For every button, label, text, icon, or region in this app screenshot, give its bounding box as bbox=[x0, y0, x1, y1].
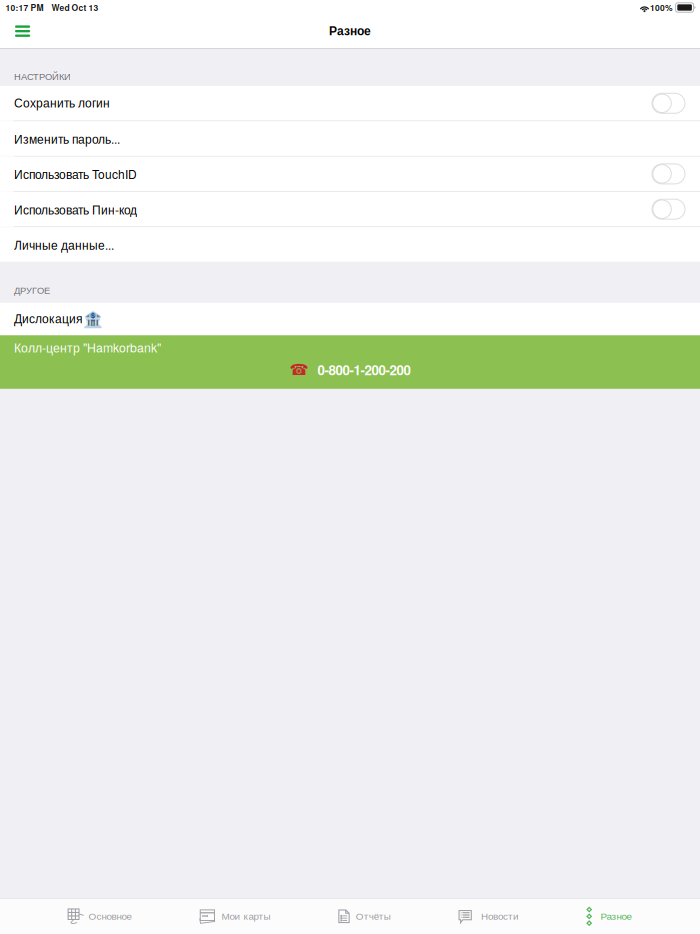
staticText: Использовать TouchID bbox=[14, 165, 137, 182]
button[interactable]: Мои карты bbox=[199, 899, 270, 934]
button[interactable]: Основное bbox=[67, 899, 131, 934]
button[interactable]: Сохранить логин bbox=[0, 86, 700, 121]
button[interactable]: Колл-центр "Hamkorbank" bbox=[0, 335, 700, 389]
button[interactable]: Изменить пароль... bbox=[0, 121, 700, 156]
button[interactable]: Личные данные... bbox=[0, 227, 700, 262]
staticText: Сохранить логин bbox=[14, 97, 110, 110]
staticText: Личные данные... bbox=[14, 236, 114, 253]
staticText: ДРУГОЕ bbox=[14, 285, 50, 296]
staticText: 0-800-1-200-200 bbox=[317, 360, 410, 379]
staticText: Основное bbox=[88, 911, 131, 922]
staticText: Колл-центр "Hamkorbank" bbox=[14, 338, 161, 356]
staticText: Мои карты bbox=[221, 911, 270, 922]
staticText: Новости bbox=[481, 911, 519, 922]
button[interactable]: Использовать Пин-код bbox=[0, 192, 700, 226]
staticText: Разное bbox=[600, 911, 631, 922]
staticText: Использовать Пин-код bbox=[14, 201, 137, 218]
button[interactable]: Новости bbox=[458, 899, 519, 934]
button[interactable]: Menu bbox=[0, 19, 43, 47]
button[interactable]: Разное bbox=[587, 899, 631, 934]
staticText: 10:17 PM bbox=[5, 1, 43, 14]
staticText: ☎ bbox=[289, 361, 308, 379]
staticText: 100% bbox=[650, 1, 673, 14]
staticText: Разное bbox=[329, 24, 371, 38]
staticText: Отчёты bbox=[356, 911, 391, 922]
staticText: 🏦 bbox=[82, 310, 102, 328]
button[interactable]: Отчёты bbox=[338, 899, 391, 934]
staticText: Дислокация bbox=[14, 312, 82, 326]
button[interactable]: Использовать TouchID bbox=[0, 157, 700, 191]
button[interactable]: Дислокация bbox=[0, 303, 700, 335]
staticText: Изменить пароль... bbox=[14, 130, 120, 147]
staticText: НАСТРОЙКИ bbox=[14, 72, 71, 82]
staticText: Wed Oct 13 bbox=[51, 1, 98, 14]
